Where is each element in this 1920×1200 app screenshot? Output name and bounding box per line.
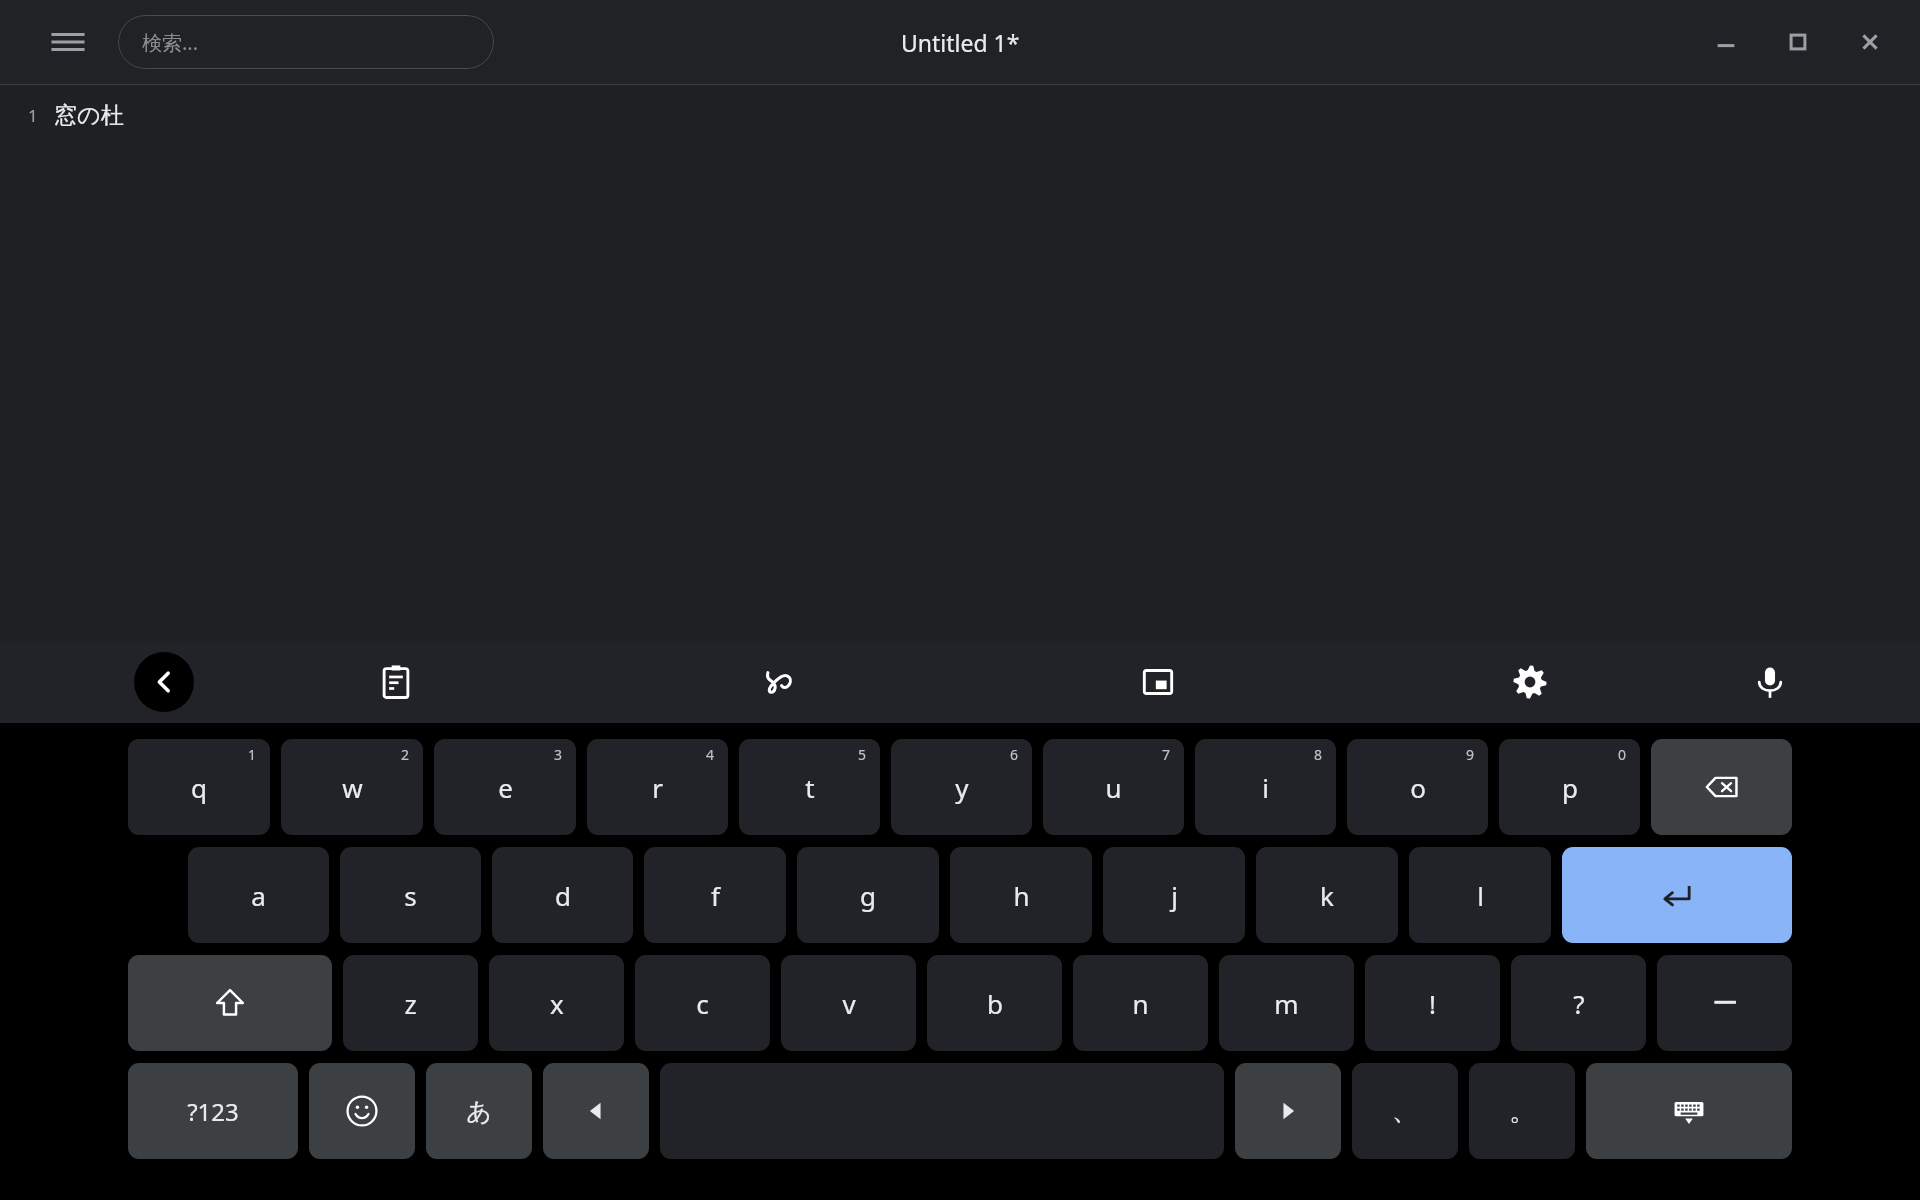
button[interactable]: Back bbox=[134, 652, 194, 712]
button[interactable]: o bbox=[1347, 739, 1488, 835]
button[interactable]: Hide keyboard bbox=[1586, 1063, 1792, 1159]
staticText: 5 bbox=[858, 745, 867, 764]
button[interactable]: ?123 bbox=[128, 1063, 298, 1159]
staticText: 6 bbox=[1010, 745, 1019, 764]
button[interactable]: Clipboard bbox=[366, 652, 426, 712]
button[interactable]: Close bbox=[1834, 6, 1906, 78]
button[interactable]: t bbox=[739, 739, 880, 835]
staticText: t bbox=[805, 770, 815, 805]
button[interactable]: Move cursor left bbox=[543, 1063, 649, 1159]
staticText: o bbox=[1410, 770, 1426, 805]
staticText: c bbox=[696, 986, 709, 1021]
staticText: j bbox=[1171, 878, 1178, 913]
staticText: y bbox=[955, 770, 969, 805]
button[interactable]: q bbox=[128, 739, 270, 835]
button[interactable]: g bbox=[797, 847, 939, 943]
button[interactable]: u bbox=[1043, 739, 1184, 835]
button[interactable]: Handwriting bbox=[748, 652, 808, 712]
button[interactable]: l bbox=[1409, 847, 1551, 943]
button[interactable]: 、 bbox=[1352, 1063, 1458, 1159]
button[interactable]: z bbox=[343, 955, 478, 1051]
staticText: k bbox=[1320, 878, 1334, 913]
staticText: n bbox=[1132, 986, 1149, 1021]
staticText: 7 bbox=[1162, 745, 1171, 764]
button[interactable]: Move cursor right bbox=[1235, 1063, 1341, 1159]
staticText: d bbox=[555, 878, 571, 913]
button[interactable]: j bbox=[1103, 847, 1245, 943]
button[interactable]: e bbox=[434, 739, 576, 835]
staticText: i bbox=[1262, 770, 1269, 805]
button[interactable]: n bbox=[1073, 955, 1208, 1051]
button[interactable]: Maximize bbox=[1762, 6, 1834, 78]
staticText: f bbox=[711, 878, 720, 913]
button[interactable]: x bbox=[489, 955, 624, 1051]
button[interactable]: Floating keyboard bbox=[1128, 652, 1188, 712]
staticText: r bbox=[652, 770, 663, 805]
button[interactable]: 検索... bbox=[118, 15, 494, 69]
staticText: 4 bbox=[706, 745, 715, 764]
button[interactable]: r bbox=[587, 739, 728, 835]
staticText: 9 bbox=[1466, 745, 1475, 764]
button[interactable]: Voice input bbox=[1740, 652, 1800, 712]
button[interactable]: Enter bbox=[1562, 847, 1792, 943]
staticText: 3 bbox=[554, 745, 563, 764]
button[interactable]: h bbox=[950, 847, 1092, 943]
staticText: v bbox=[842, 986, 856, 1021]
staticText: ー bbox=[1712, 987, 1738, 1020]
button[interactable]: d bbox=[492, 847, 633, 943]
staticText: 検索... bbox=[142, 29, 199, 56]
staticText: あ bbox=[466, 1096, 492, 1127]
staticText: ? bbox=[1573, 986, 1585, 1021]
staticText: 1 bbox=[28, 104, 38, 127]
staticText: q bbox=[191, 770, 207, 805]
button[interactable]: a bbox=[188, 847, 329, 943]
button[interactable]: c bbox=[635, 955, 770, 1051]
staticText: 2 bbox=[401, 745, 410, 764]
staticText: 窓の杜 bbox=[54, 101, 124, 130]
button[interactable]: p bbox=[1499, 739, 1640, 835]
staticText: l bbox=[1477, 878, 1484, 913]
staticText: b bbox=[987, 986, 1003, 1021]
button[interactable]: i bbox=[1195, 739, 1336, 835]
staticText: h bbox=[1013, 878, 1030, 913]
staticText: e bbox=[498, 770, 513, 805]
button[interactable]: Menu bbox=[44, 18, 92, 66]
button[interactable]: Shift bbox=[128, 955, 332, 1051]
button[interactable]: f bbox=[644, 847, 786, 943]
staticText: a bbox=[251, 878, 266, 913]
staticText: z bbox=[404, 986, 417, 1021]
button[interactable]: 。 bbox=[1469, 1063, 1575, 1159]
button[interactable]: ! bbox=[1365, 955, 1500, 1051]
staticText: 0 bbox=[1618, 745, 1627, 764]
button[interactable]: m bbox=[1219, 955, 1354, 1051]
button[interactable]: Backspace bbox=[1651, 739, 1792, 835]
staticText: 1 bbox=[248, 745, 257, 764]
button[interactable]: ー bbox=[1657, 955, 1792, 1051]
button[interactable]: ? bbox=[1511, 955, 1646, 1051]
staticText: ! bbox=[1429, 986, 1436, 1021]
button[interactable]: v bbox=[781, 955, 916, 1051]
staticText: 、 bbox=[1392, 1095, 1418, 1128]
button[interactable]: Minimize bbox=[1690, 6, 1762, 78]
staticText: g bbox=[860, 878, 876, 913]
button[interactable]: あ bbox=[426, 1063, 532, 1159]
staticText: Untitled 1* bbox=[901, 27, 1020, 58]
button[interactable]: s bbox=[340, 847, 481, 943]
staticText: w bbox=[342, 770, 363, 805]
button[interactable]: Settings bbox=[1500, 652, 1560, 712]
staticText: m bbox=[1274, 986, 1299, 1021]
staticText: ?123 bbox=[187, 1095, 239, 1128]
staticText: 8 bbox=[1314, 745, 1323, 764]
staticText: x bbox=[550, 986, 564, 1021]
staticText: s bbox=[404, 878, 417, 913]
button[interactable]: y bbox=[891, 739, 1032, 835]
button[interactable]: w bbox=[281, 739, 423, 835]
button[interactable]: b bbox=[927, 955, 1062, 1051]
staticText: p bbox=[1562, 770, 1578, 805]
staticText: u bbox=[1105, 770, 1122, 805]
button[interactable]: k bbox=[1256, 847, 1398, 943]
staticText: 。 bbox=[1509, 1095, 1535, 1128]
button[interactable]: Emoji bbox=[309, 1063, 415, 1159]
